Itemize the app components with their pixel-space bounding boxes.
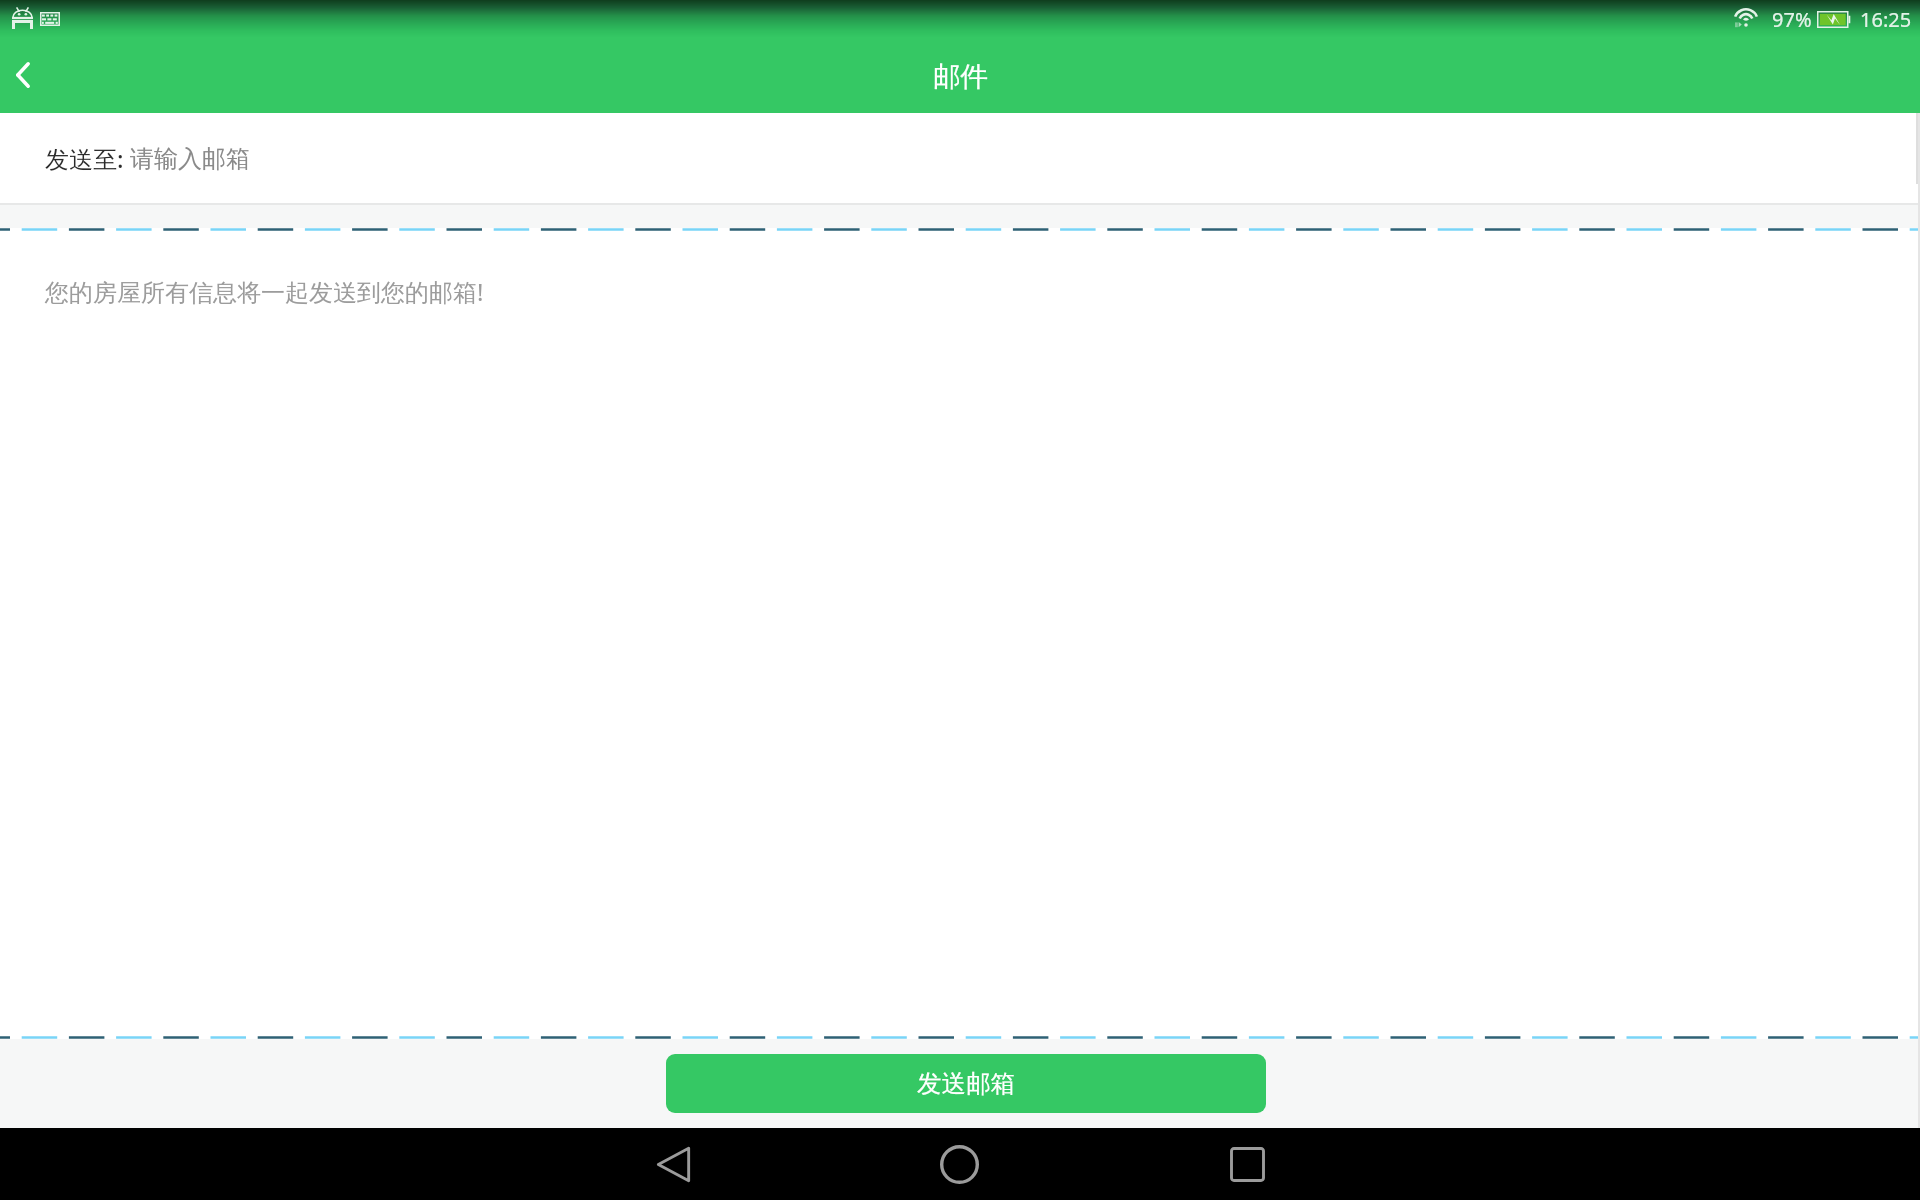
other: Debug xyxy=(12,7,33,29)
button[interactable]: Back xyxy=(0,49,45,101)
button[interactable]: Home xyxy=(921,1128,997,1200)
staticText: 发送邮箱 xyxy=(917,1068,1015,1099)
staticText: 请输入邮箱 xyxy=(130,144,250,174)
button[interactable]: Back xyxy=(635,1128,711,1200)
other: Battery xyxy=(1817,11,1850,28)
button[interactable]: 发送至: xyxy=(0,113,1920,203)
other: Keyboard xyxy=(40,12,60,26)
other: Wi-Fi xyxy=(1733,7,1759,29)
button[interactable]: 发送邮箱 xyxy=(666,1054,1266,1113)
button[interactable]: Recents xyxy=(1209,1128,1285,1200)
staticText: 您的房屋所有信息将一起发送到您的邮箱! xyxy=(45,275,484,308)
staticText: 发送至: xyxy=(45,142,130,175)
staticText: 97% xyxy=(1772,6,1812,33)
staticText: 16:25 xyxy=(1860,6,1912,33)
staticText: 邮件 xyxy=(933,60,988,95)
